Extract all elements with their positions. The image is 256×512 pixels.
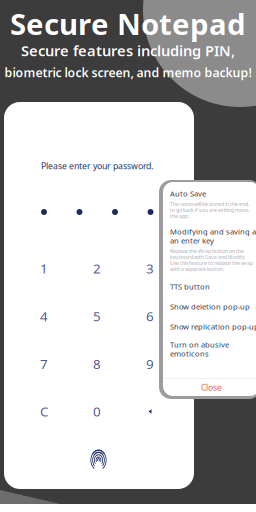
button[interactable]: Show deletion pop-up [163,302,256,311]
button[interactable]: 2 [70,244,123,292]
staticText: the app. [170,212,189,219]
staticText: 4 [40,307,48,325]
staticText: Modifying and saving as [170,226,256,237]
staticText: Close [201,382,222,393]
staticText: 2 [93,259,101,277]
staticText: The notes will be stored in the end, [170,200,249,207]
staticText: keyboard with Save and Modify. [170,253,245,260]
button[interactable]: 9 [123,340,176,388]
button[interactable]: Modifying and saving as [163,227,256,272]
staticText: an enter key [170,235,214,246]
staticText: 5 [93,307,101,325]
staticText: Use this feature to replace the wrap [170,259,253,266]
button[interactable]: 5 [70,292,123,340]
button[interactable]: 8 [70,340,123,388]
button[interactable]: C [17,388,70,435]
button[interactable]: Close [163,379,256,396]
staticText: 8 [93,355,101,373]
staticText: TTS button [170,281,210,292]
button[interactable]: 0 [70,388,123,435]
staticText: 7 [40,355,48,373]
button[interactable]: Turn on abusive [163,340,256,358]
staticText: 1 [40,259,48,277]
button[interactable]: 6 [123,292,176,340]
staticText: to go back if you are writing notes, [170,206,249,213]
button[interactable]: 7 [17,340,70,388]
staticText: biometric lock screen, and memo backup! [4,64,251,81]
staticText: 9 [146,355,154,373]
button[interactable]: Delete [123,388,176,435]
staticText: emoticons [170,348,209,359]
staticText: Turn on abusive [170,339,229,350]
button[interactable]: 4 [17,292,70,340]
staticText: 0 [93,402,101,421]
staticText: Replace the Wrap button on the [170,247,244,254]
staticText: Secure features including PIN, [21,40,235,60]
staticText: Secure Notepad [10,3,246,43]
staticText: Auto Save [170,188,206,199]
button[interactable]: Show replication pop-up [163,322,256,331]
staticText: C [40,402,48,421]
staticText: with a separate button. [170,265,224,272]
staticText: 6 [146,307,154,325]
staticText: Show replication pop-up [170,321,256,332]
button[interactable]: Unlock with fingerprint [91,450,106,469]
staticText: Show deletion pop-up [170,301,250,312]
button[interactable]: TTS button [163,282,256,291]
button[interactable]: 3 [123,244,176,292]
staticText: Please enter your password. [41,160,153,172]
staticText: 3 [146,259,154,277]
button[interactable]: Auto Save [163,189,256,219]
button[interactable]: 1 [17,244,70,292]
